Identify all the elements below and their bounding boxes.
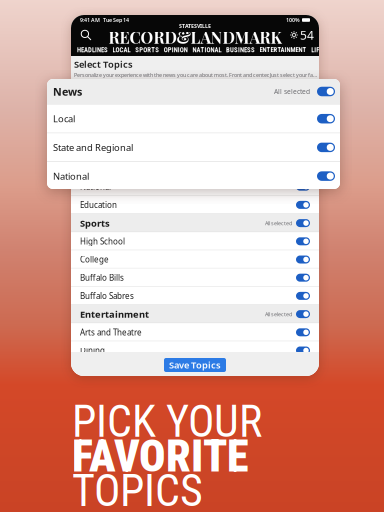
- staticText: News: [53, 84, 82, 99]
- button[interactable]: State and Regional: [47, 133, 340, 161]
- staticText: STATESVILLE: [179, 22, 211, 29]
- button[interactable]: Local: [71, 141, 319, 159]
- staticText: All selected: [265, 311, 292, 318]
- staticText: National: [53, 170, 89, 182]
- staticText: RECORD&LANDMARK: [108, 26, 281, 48]
- staticText: Local: [53, 112, 75, 125]
- button[interactable]: News: [47, 79, 340, 104]
- button[interactable]: LOCAL: [113, 46, 131, 54]
- button[interactable]: Dining: [71, 341, 319, 360]
- button[interactable]: National: [47, 162, 340, 190]
- button[interactable]: College: [71, 250, 319, 269]
- staticText: Buffalo Sabres: [80, 291, 134, 301]
- button[interactable]: Arts and Theatre: [71, 323, 319, 341]
- button[interactable]: LIFESTYLE: [311, 46, 340, 54]
- staticText: NATIONAL: [192, 46, 221, 54]
- staticText: Local: [80, 145, 99, 156]
- button[interactable]: National: [71, 178, 319, 196]
- staticText: Education: [80, 200, 117, 210]
- staticText: BUSINESS: [226, 46, 255, 54]
- button[interactable]: State and Regional: [71, 159, 319, 178]
- staticText: HEADLINES: [77, 46, 108, 54]
- button[interactable]: SPORTS: [135, 46, 159, 54]
- button[interactable]: Search: [76, 25, 96, 45]
- staticText: LOCAL: [113, 46, 131, 54]
- button[interactable]: Buffalo Bills: [71, 269, 319, 287]
- staticText: High School: [80, 236, 125, 247]
- button[interactable]: Weather 54 degrees: [286, 25, 314, 45]
- staticText: ENTERTAINMENT: [260, 46, 307, 54]
- staticText: PICK YOUR: [72, 396, 262, 448]
- staticText: SPORTS: [135, 46, 159, 54]
- button[interactable]: Sports: [71, 214, 319, 232]
- button[interactable]: Entertainment: [71, 305, 319, 323]
- button[interactable]: HEADLINES: [77, 46, 108, 54]
- staticText: Buffalo Bills: [80, 272, 124, 283]
- staticText: OPINION: [164, 46, 188, 54]
- button[interactable]: NATIONAL: [192, 46, 221, 54]
- staticText: Select Topics: [74, 58, 133, 70]
- button[interactable]: OPINION: [164, 46, 188, 54]
- staticText: Save Topics: [169, 359, 221, 371]
- staticText: News: [80, 126, 106, 138]
- staticText: 54: [300, 27, 314, 43]
- staticText: Personalize your experience with the new…: [74, 71, 319, 78]
- button[interactable]: Education: [71, 196, 319, 214]
- staticText: All selected: [265, 129, 292, 136]
- staticText: All selected: [265, 220, 292, 227]
- staticText: Entertainment: [80, 308, 149, 320]
- staticText: Arts and Theatre: [80, 327, 142, 338]
- staticText: LIFESTYLE: [311, 46, 340, 54]
- button[interactable]: BUSINESS: [226, 46, 255, 54]
- staticText: National: [80, 181, 111, 192]
- staticText: Dining: [80, 345, 105, 356]
- button[interactable]: Buffalo Sabres: [71, 287, 319, 305]
- staticText: 9:41 AM Tue Sep 14: [80, 16, 129, 24]
- staticText: College: [80, 254, 109, 265]
- staticText: Sports: [80, 217, 110, 229]
- staticText: TOPICS: [72, 465, 203, 512]
- staticText: State and Regional: [53, 141, 133, 154]
- button[interactable]: Save Topics: [164, 358, 226, 372]
- button[interactable]: News: [71, 123, 319, 141]
- button[interactable]: Local: [47, 105, 340, 133]
- button[interactable]: ENTERTAINMENT: [260, 46, 307, 54]
- button[interactable]: High School: [71, 232, 319, 250]
- staticText: FAVORITE: [72, 431, 248, 482]
- staticText: All selected: [274, 87, 310, 96]
- staticText: 100%: [286, 16, 300, 24]
- staticText: State and Regional: [80, 163, 150, 174]
